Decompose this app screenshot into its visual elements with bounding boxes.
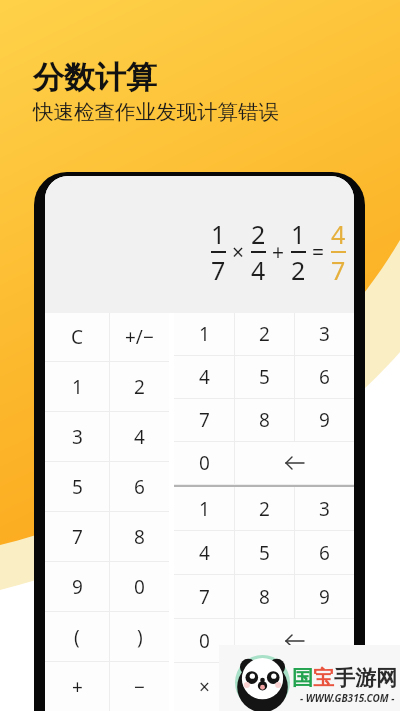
staticText: 1 (72, 374, 83, 400)
staticText: - WWW.GB315.COM - (300, 691, 395, 705)
staticText: 2 (291, 253, 306, 287)
staticText: 7 (72, 524, 83, 550)
button[interactable]: 2 (235, 313, 294, 355)
button[interactable]: ( (45, 612, 109, 661)
staticText: 2 (134, 374, 145, 400)
staticText: 7 (331, 253, 346, 287)
button[interactable]: Backspace (235, 442, 354, 484)
button[interactable]: 0 (110, 562, 169, 611)
button[interactable]: 4 (174, 531, 234, 574)
staticText: 8 (259, 584, 270, 610)
staticText: 7 (211, 253, 226, 287)
staticText: − (134, 674, 145, 700)
staticText: 3 (319, 496, 330, 522)
button[interactable]: 3 (295, 487, 354, 530)
staticText: 1 (199, 496, 210, 522)
button[interactable]: 5 (45, 462, 109, 511)
button[interactable]: 4 (110, 412, 169, 461)
button[interactable]: 8 (110, 512, 169, 561)
staticText: 国 (292, 665, 313, 691)
button[interactable]: 3 (45, 412, 109, 461)
button[interactable]: 8 (235, 575, 294, 618)
staticText: 6 (134, 474, 145, 500)
button[interactable]: ÷ (235, 663, 294, 711)
button[interactable]: 9 (45, 562, 109, 611)
staticText: 4 (251, 253, 266, 287)
staticText: 2 (259, 321, 270, 347)
staticText: 0 (199, 628, 210, 654)
button[interactable]: 9 (295, 399, 354, 441)
staticText: 0 (134, 574, 145, 600)
button[interactable]: ) (110, 612, 169, 661)
button[interactable]: 7 (174, 575, 234, 618)
staticText: = (312, 238, 325, 267)
staticText: 分数计算 (33, 58, 157, 97)
button[interactable]: 6 (295, 356, 354, 398)
button[interactable]: Backspace (235, 619, 354, 662)
button[interactable]: 9 (295, 575, 354, 618)
staticText: 9 (72, 574, 83, 600)
staticText: 手游网 (334, 665, 397, 691)
staticText: 4 (331, 217, 346, 251)
button[interactable]: 6 (110, 462, 169, 511)
button[interactable]: 2 (110, 362, 169, 411)
button[interactable]: 5 (235, 531, 294, 574)
staticText: + (272, 238, 285, 267)
staticText: + (72, 674, 83, 700)
staticText: 2 (251, 217, 266, 251)
staticText: 1 (199, 321, 210, 347)
staticText: 9 (319, 407, 330, 433)
staticText: 5 (259, 364, 270, 390)
button[interactable]: 7 (174, 399, 234, 441)
button[interactable]: 0 (174, 619, 234, 662)
staticText: 9 (319, 584, 330, 610)
staticText: 快速检查作业发现计算错误 (33, 99, 279, 125)
button[interactable]: 0 (174, 442, 234, 484)
staticText: C (71, 324, 84, 350)
staticText: 7 (199, 584, 210, 610)
button[interactable]: − (110, 662, 169, 711)
staticText: 3 (319, 321, 330, 347)
button[interactable]: 1 (174, 313, 234, 355)
staticText: 宝 (313, 665, 334, 691)
staticText: ( (74, 624, 80, 650)
button[interactable]: C (45, 313, 109, 361)
button[interactable]: × (174, 663, 234, 711)
staticText: × (232, 238, 245, 267)
button[interactable]: 1 (174, 487, 234, 530)
staticText: 0 (199, 450, 210, 476)
staticText: +/− (125, 324, 154, 350)
button[interactable]: 6 (295, 531, 354, 574)
button[interactable]: 5 (235, 356, 294, 398)
staticText: 7 (199, 407, 210, 433)
button[interactable]: = (295, 663, 354, 711)
button[interactable]: +/− (110, 313, 169, 361)
button[interactable]: 4 (174, 356, 234, 398)
staticText: 8 (134, 524, 145, 550)
staticText: 5 (259, 540, 270, 566)
staticText: = (319, 674, 330, 700)
button[interactable]: 7 (45, 512, 109, 561)
staticText: 2 (259, 496, 270, 522)
staticText: 1 (211, 217, 226, 251)
staticText: 3 (72, 424, 83, 450)
staticText: 1 (291, 217, 306, 251)
staticText: × (199, 674, 210, 700)
button[interactable]: 8 (235, 399, 294, 441)
staticText: 4 (199, 540, 210, 566)
staticText: 6 (319, 364, 330, 390)
staticText: 4 (199, 364, 210, 390)
staticText: 6 (319, 540, 330, 566)
button[interactable]: 3 (295, 313, 354, 355)
staticText: 4 (134, 424, 145, 450)
button[interactable]: + (45, 662, 109, 711)
button[interactable]: 1 (45, 362, 109, 411)
button[interactable]: 2 (235, 487, 294, 530)
staticText: ) (137, 624, 143, 650)
staticText: 8 (259, 407, 270, 433)
staticText: ÷ (259, 674, 270, 700)
staticText: 5 (72, 474, 83, 500)
